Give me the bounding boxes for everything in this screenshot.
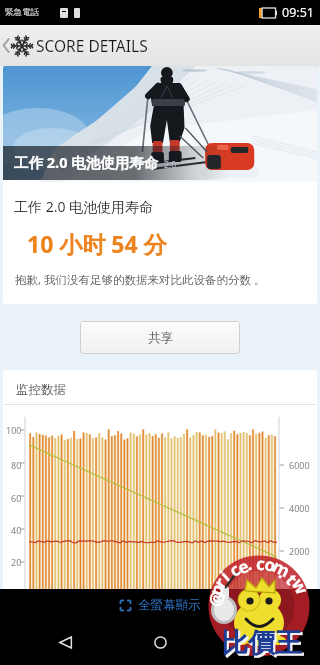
staticText: t <box>281 569 303 590</box>
staticText: 4000 <box>289 502 310 514</box>
button[interactable]: Back <box>35 620 95 665</box>
staticText: 共享 <box>148 330 173 346</box>
staticText: i <box>215 565 235 586</box>
button[interactable]: Home <box>130 620 190 665</box>
staticText: 80 <box>11 459 22 471</box>
staticText: SCORE DETAILS <box>36 35 148 56</box>
staticText: 比價王 <box>221 626 302 660</box>
button[interactable]: 共享 <box>80 321 240 354</box>
staticText: 抱歉, 我们没有足够的数据来对比此设备的分数 。 <box>15 272 266 288</box>
staticText: . <box>274 562 292 583</box>
staticText: 工作 2.0 电池使用寿命 <box>14 197 154 216</box>
staticText: 20 <box>11 556 22 568</box>
staticText: 比價王 <box>223 628 304 662</box>
staticText: 2000 <box>289 545 310 557</box>
staticText: 全螢幕顯示 <box>138 597 201 613</box>
staticText: 09:51 <box>282 4 314 21</box>
staticText: 6000 <box>289 459 310 471</box>
staticText: e <box>234 554 252 579</box>
staticText: @ <box>203 588 229 609</box>
button[interactable]: Recent apps <box>225 620 285 665</box>
staticText: c <box>255 552 266 575</box>
staticText: p <box>204 580 229 599</box>
staticText: . <box>245 552 254 575</box>
staticText: c <box>225 557 244 582</box>
staticText: m <box>269 554 294 582</box>
staticText: r <box>208 572 232 593</box>
staticText: 监控数据 <box>16 382 66 398</box>
staticText: w <box>287 574 314 599</box>
staticText: 2.0 <box>164 159 177 171</box>
staticText: o <box>262 552 279 577</box>
staticText: 緊急電話 <box>5 7 39 18</box>
staticText: 10 小时 54 分 <box>27 228 167 259</box>
staticText: 40 <box>11 524 22 536</box>
button[interactable]: Back <box>0 25 11 66</box>
button[interactable]: 全螢幕顯示 <box>112 593 209 617</box>
staticText: 100 <box>6 424 22 436</box>
staticText: 工作 2.0 电池使用寿命 <box>14 152 159 172</box>
staticText: 60 <box>11 492 22 504</box>
